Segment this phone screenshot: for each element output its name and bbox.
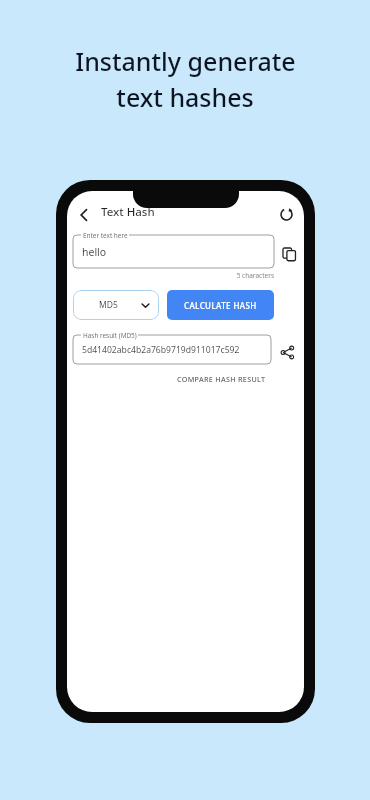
button[interactable]: Hash result (MD5) — [73, 335, 271, 364]
button[interactable]: CALCULATE HASH — [167, 290, 274, 320]
staticText: 5d41402abc4b2a76b9719d911017c592 — [82, 344, 240, 356]
staticText: Enter text here — [83, 231, 128, 240]
button[interactable]: Back — [71, 202, 97, 228]
button[interactable]: MD5 — [73, 290, 159, 320]
staticText: MD5 — [99, 299, 118, 311]
staticText: Text Hash — [101, 204, 155, 220]
staticText: Hash result (MD5) — [83, 331, 137, 340]
button[interactable]: COMPARE HASH RESULT — [177, 370, 266, 388]
staticText: CALCULATE HASH — [184, 300, 257, 311]
staticText: Instantly generate — [75, 44, 296, 78]
button[interactable]: Share — [276, 341, 298, 363]
button[interactable]: Refresh — [272, 200, 300, 228]
button[interactable]: Enter text here — [73, 235, 274, 268]
staticText: text hashes — [116, 80, 254, 114]
staticText: hello — [82, 245, 107, 259]
staticText: COMPARE HASH RESULT — [177, 374, 266, 384]
button[interactable]: Copy — [278, 243, 300, 265]
staticText: 5 characters — [67, 271, 274, 280]
